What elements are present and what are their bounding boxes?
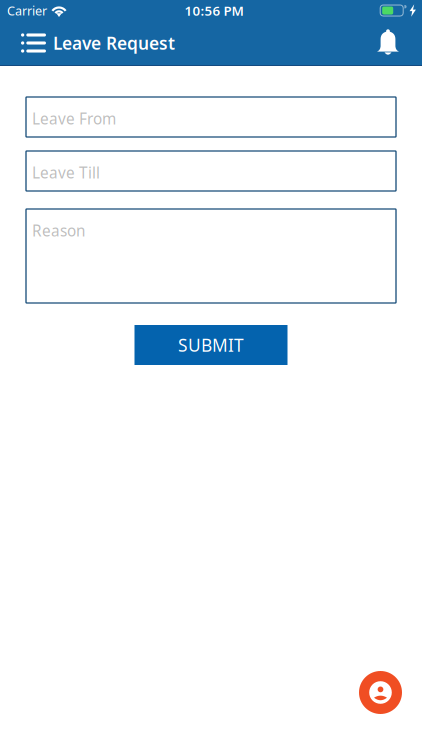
button[interactable]: Leave Till	[26, 151, 396, 191]
staticText: SUBMIT	[178, 333, 244, 357]
button[interactable]: Notifications	[377, 21, 422, 65]
button[interactable]: Profile	[359, 671, 402, 714]
button[interactable]: Leave From	[26, 97, 396, 137]
button[interactable]: Reason	[26, 209, 396, 303]
staticText: Leave Till	[32, 162, 100, 183]
staticText: Leave Request	[53, 31, 175, 55]
staticText: Leave From	[32, 108, 116, 129]
staticText: Carrier	[7, 2, 47, 19]
staticText: Reason	[32, 220, 85, 241]
button[interactable]: SUBMIT	[134, 325, 287, 365]
button[interactable]: Menu	[0, 21, 53, 65]
staticText: 10:56 PM	[184, 1, 243, 20]
